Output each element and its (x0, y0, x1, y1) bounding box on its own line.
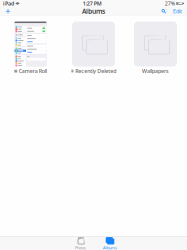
staticText: Photos (75, 245, 86, 250)
button[interactable]: Edit (171, 7, 183, 15)
button[interactable]: Photos (66, 237, 95, 250)
button[interactable]: Camera Roll (9, 21, 52, 74)
staticText: Albums (103, 245, 117, 250)
button[interactable]: Search (159, 7, 168, 15)
staticText: Albums (82, 7, 105, 16)
button[interactable]: New Album (3, 7, 12, 15)
staticText: 1:27 PM (83, 0, 102, 7)
staticText: iPad (3, 0, 14, 7)
button[interactable]: Albums (95, 237, 124, 250)
staticText: Recently Deleted (75, 67, 116, 75)
button[interactable]: Recently Deleted (72, 21, 115, 74)
staticText: Edit (173, 8, 182, 15)
staticText: 27% (165, 0, 175, 7)
staticText: Camera Roll (19, 67, 47, 75)
button[interactable]: Wallpapers (134, 21, 177, 74)
staticText: Wallpapers (142, 67, 169, 75)
